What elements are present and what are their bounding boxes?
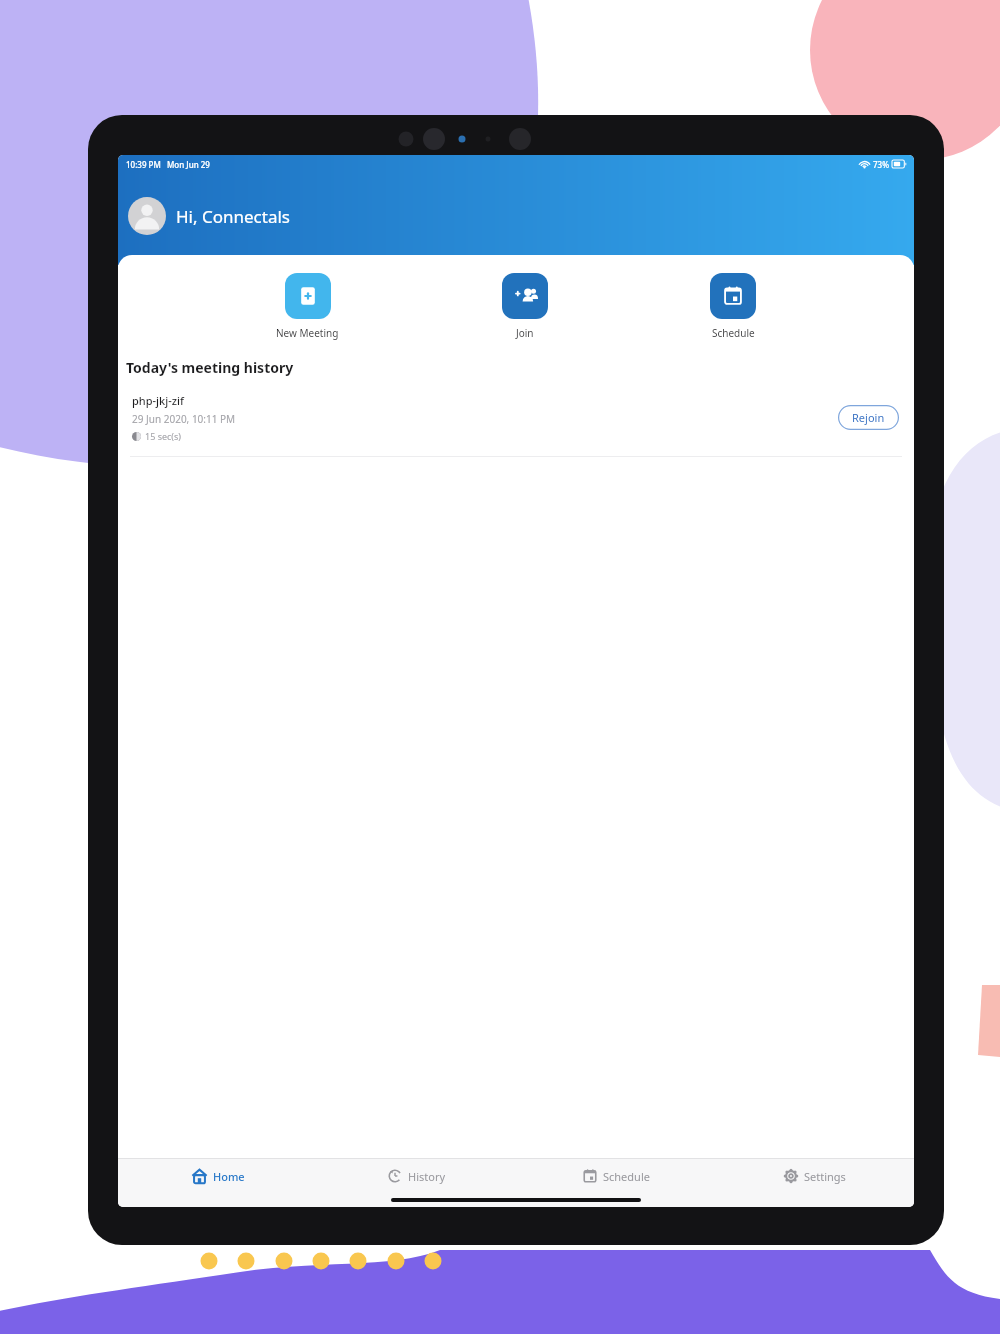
button[interactable]: History	[317, 1168, 516, 1184]
staticText: Schedule	[603, 1169, 650, 1184]
staticText: Join	[516, 326, 534, 340]
button[interactable]: Rejoin	[837, 404, 900, 431]
staticText: Hi, Connectals	[176, 205, 290, 228]
staticText: Mon Jun 29	[167, 159, 210, 170]
staticText: 10:39 PM	[126, 159, 161, 170]
staticText: New Meeting	[276, 326, 339, 340]
button[interactable]: Schedule	[706, 273, 760, 340]
staticText: 29 Jun 2020, 10:11 PM	[132, 412, 236, 426]
staticText: History	[408, 1169, 446, 1184]
staticText: Settings	[804, 1169, 846, 1184]
button[interactable]: Home	[118, 1168, 317, 1185]
button[interactable]: Schedule	[516, 1168, 715, 1184]
staticText: 15 sec(s)	[145, 430, 182, 442]
button[interactable]: Profile	[128, 197, 290, 235]
button[interactable]: Settings	[715, 1168, 914, 1184]
staticText: Rejoin	[852, 410, 885, 425]
staticText: Home	[213, 1169, 245, 1184]
button[interactable]: php-jkj-zif	[118, 389, 914, 446]
other: Profile	[128, 197, 166, 235]
staticText: php-jkj-zif	[132, 393, 184, 408]
button[interactable]: New Meeting	[272, 273, 343, 340]
staticText: Schedule	[712, 326, 755, 340]
staticText: Today's meeting history	[126, 358, 294, 377]
button[interactable]: Join	[498, 273, 552, 340]
staticText: 73%	[873, 159, 889, 170]
